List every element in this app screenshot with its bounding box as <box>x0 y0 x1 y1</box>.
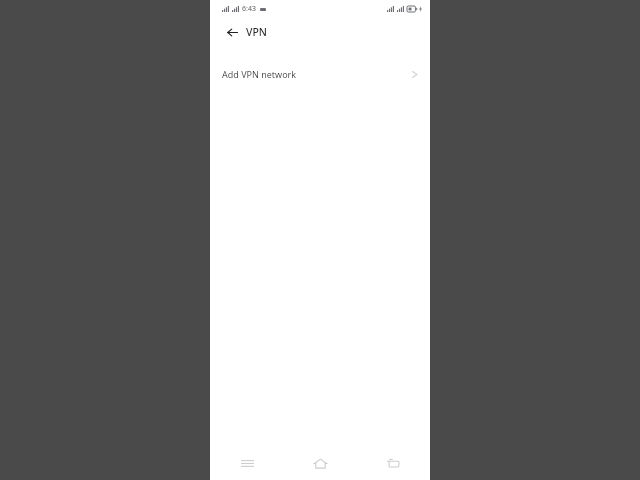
staticText: Add VPN network <box>222 68 297 80</box>
button[interactable]: Add VPN network <box>210 61 430 87</box>
button[interactable]: Home <box>284 446 357 480</box>
button[interactable]: Back <box>223 23 241 41</box>
staticText: 6:43 <box>242 4 256 14</box>
button[interactable]: Back <box>357 446 430 480</box>
staticText: VPN <box>246 25 268 39</box>
button[interactable]: Recent apps <box>210 446 284 480</box>
